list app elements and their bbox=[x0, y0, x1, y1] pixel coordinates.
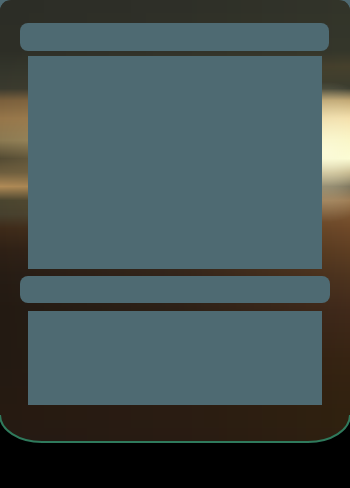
button[interactable]: Actions bbox=[20, 276, 330, 303]
button[interactable]: Search bbox=[20, 23, 329, 51]
